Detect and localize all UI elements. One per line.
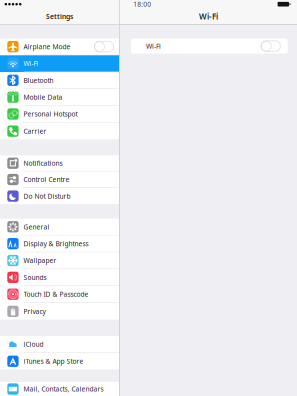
staticText: Display & Brightness: [24, 239, 89, 248]
button[interactable]: Privacy: [0, 303, 119, 320]
staticText: Airplane Mode: [24, 42, 71, 51]
button[interactable]: iTunes & App Store: [0, 353, 119, 370]
staticText: Mobile Data: [24, 93, 63, 102]
staticText: Notifications: [24, 159, 63, 168]
staticText: 18:00: [133, 0, 151, 9]
button[interactable]: Mail, Contacts, Calendars: [0, 382, 119, 396]
button[interactable]: Touch ID & Passcode: [0, 286, 119, 303]
button[interactable]: Do Not Disturb: [0, 188, 119, 204]
button[interactable]: Wallpaper: [0, 252, 119, 269]
button[interactable]: Wi-Fi: [0, 55, 119, 72]
staticText: Control Centre: [24, 175, 70, 184]
staticText: Personal Hotspot: [24, 110, 78, 118]
button[interactable]: Carrier: [0, 123, 119, 140]
staticText: General: [24, 222, 50, 231]
staticText: Wallpaper: [24, 256, 57, 265]
staticText: Wi-Fi: [24, 59, 39, 68]
button[interactable]: Mobile Data: [0, 89, 119, 106]
staticText: Bluetooth: [24, 76, 54, 85]
staticText: Privacy: [24, 307, 46, 316]
staticText: Settings: [46, 12, 73, 21]
button[interactable]: Wi-Fi: [131, 39, 288, 54]
button[interactable]: iCloud: [0, 336, 119, 353]
staticText: Wi-Fi: [146, 42, 161, 51]
staticText: iTunes & App Store: [24, 357, 84, 366]
staticText: Do Not Disturb: [24, 192, 71, 201]
staticText: Mail, Contacts, Calendars: [24, 385, 104, 393]
staticText: Sounds: [24, 273, 47, 282]
button[interactable]: General: [0, 219, 119, 235]
button[interactable]: Airplane Mode: [0, 38, 119, 55]
button[interactable]: Bluetooth: [0, 72, 119, 89]
button[interactable]: Personal Hotspot: [0, 106, 119, 123]
staticText: Carrier: [24, 127, 47, 136]
button[interactable]: Control Centre: [0, 172, 119, 188]
staticText: Wi-Fi: [199, 11, 218, 22]
button[interactable]: Display & Brightness: [0, 235, 119, 252]
staticText: iCloud: [24, 340, 44, 349]
button[interactable]: Notifications: [0, 155, 119, 172]
staticText: Touch ID & Passcode: [24, 290, 89, 299]
button[interactable]: Sounds: [0, 269, 119, 286]
